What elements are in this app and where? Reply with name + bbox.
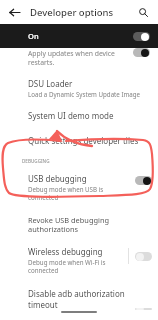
button[interactable]: Switch on xyxy=(133,32,150,41)
staticText: Revoke USB debugging authorizations xyxy=(28,215,154,234)
staticText: On xyxy=(28,31,39,41)
staticText: restarts. xyxy=(28,58,55,67)
staticText: USB debugging xyxy=(28,173,87,184)
button[interactable]: Switch on xyxy=(135,176,152,185)
button[interactable]: Switch off xyxy=(135,308,152,310)
button[interactable]: Switch on xyxy=(133,48,150,57)
button[interactable]: USB debugging xyxy=(0,173,158,201)
button[interactable]: Wireless debugging xyxy=(0,246,158,274)
staticText: System UI demo mode xyxy=(28,110,114,121)
button[interactable]: Quick settings developer tiles xyxy=(0,135,158,146)
staticText: Quick settings developer tiles xyxy=(28,135,139,146)
button[interactable]: Apply updates when device xyxy=(0,48,158,70)
staticText: Load a Dynamic System Update Image xyxy=(28,90,141,98)
staticText: Disable adb authorization xyxy=(28,288,125,299)
staticText: connected xyxy=(28,193,59,201)
staticText: DSU Loader xyxy=(28,78,73,89)
button[interactable]: Disable adb authorization xyxy=(0,288,158,310)
button[interactable]: DSU Loader xyxy=(0,78,158,98)
button[interactable]: Switch off xyxy=(135,252,152,261)
staticText: timeout xyxy=(28,299,58,310)
staticText: Debug mode when Wi-Fi is xyxy=(28,258,106,266)
staticText: DEBUGGING xyxy=(22,158,50,164)
staticText: connected xyxy=(28,266,59,274)
staticText: Wireless debugging xyxy=(28,246,103,257)
staticText: Debug mode when USB is xyxy=(28,185,104,193)
button[interactable]: System UI demo mode xyxy=(0,110,158,121)
staticText: Apply updates when device xyxy=(28,49,115,58)
button[interactable]: Search xyxy=(134,3,152,21)
button[interactable]: Revoke USB debugging authorizations xyxy=(0,215,158,234)
button[interactable]: On xyxy=(0,24,158,48)
button[interactable]: Back xyxy=(4,2,24,22)
staticText: Developer options xyxy=(30,6,114,19)
